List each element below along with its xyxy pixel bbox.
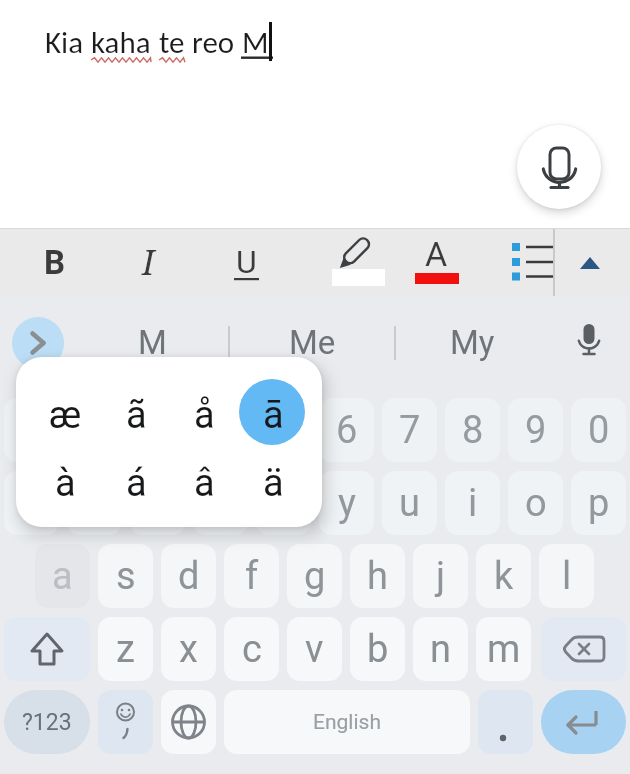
button[interactable] [541, 617, 626, 681]
button[interactable]: á [109, 452, 163, 514]
button[interactable]: U [221, 236, 271, 288]
button[interactable] [541, 690, 626, 754]
button[interactable]: My [430, 316, 514, 368]
staticText: y [338, 481, 356, 526]
button[interactable]: Me [270, 316, 354, 368]
staticText: à [55, 461, 76, 506]
button[interactable]: d [161, 544, 216, 608]
staticText: 0 [588, 408, 610, 453]
staticText: g [304, 554, 326, 599]
button[interactable]: t [256, 471, 311, 535]
button[interactable]: v [287, 617, 342, 681]
button[interactable]: a [35, 544, 90, 608]
staticText: v [305, 627, 324, 672]
staticText: B [44, 243, 66, 282]
button[interactable]: ā [246, 384, 300, 446]
button[interactable]: 3 [130, 398, 185, 462]
button[interactable]: f [224, 544, 279, 608]
button[interactable]: A [411, 232, 461, 276]
staticText: f [245, 554, 259, 599]
staticText: reo [185, 23, 242, 61]
staticText: á [126, 461, 147, 506]
button[interactable]: p [571, 471, 626, 535]
staticText: ä [263, 461, 284, 506]
button[interactable]: 4 [193, 398, 248, 462]
button[interactable]: i [445, 471, 500, 535]
button[interactable] [161, 690, 216, 754]
staticText: M [138, 323, 167, 362]
button[interactable] [505, 238, 560, 286]
button[interactable]: 5 [256, 398, 311, 462]
button[interactable]: g [287, 544, 342, 608]
button[interactable]: ?123 [4, 690, 90, 754]
staticText: kaha [91, 23, 151, 61]
button[interactable]: x [161, 617, 216, 681]
button[interactable] [325, 230, 387, 292]
button[interactable]: M [110, 316, 194, 368]
button[interactable]: o [508, 471, 563, 535]
button[interactable]: c [224, 617, 279, 681]
button[interactable] [574, 316, 604, 368]
button[interactable]: English [224, 690, 470, 754]
staticText: m [487, 627, 521, 672]
button[interactable]: 8 [445, 398, 500, 462]
staticText: c [242, 627, 262, 672]
button[interactable]: ä [246, 452, 300, 514]
staticText: a [52, 554, 73, 599]
button[interactable]: ã [109, 384, 163, 446]
button[interactable]: b [350, 617, 405, 681]
staticText: te [159, 23, 185, 61]
staticText [151, 23, 159, 61]
staticText: 6 [336, 408, 358, 453]
button[interactable]: 7 [382, 398, 437, 462]
button[interactable] [575, 250, 605, 276]
button[interactable]: r [193, 471, 248, 535]
button[interactable]: w [67, 471, 122, 535]
button[interactable] [517, 125, 601, 209]
button[interactable] [478, 690, 533, 754]
staticText: k [494, 554, 514, 599]
button[interactable]: 2 [67, 398, 122, 462]
button[interactable] [4, 617, 90, 681]
button[interactable]: 6 [319, 398, 374, 462]
staticText: x [179, 627, 198, 672]
button[interactable]: k [476, 544, 531, 608]
button[interactable]: Kia [45, 23, 269, 61]
button[interactable]: æ [38, 384, 92, 446]
button[interactable] [12, 317, 64, 369]
staticText: M [242, 23, 269, 61]
button[interactable]: l [539, 544, 594, 608]
button[interactable]: y [319, 471, 374, 535]
staticText: 9 [525, 408, 547, 453]
button[interactable]: h [350, 544, 405, 608]
button[interactable] [98, 690, 153, 754]
staticText: p [588, 481, 610, 526]
button[interactable]: 1 [4, 398, 59, 462]
button[interactable]: j [413, 544, 468, 608]
staticText: A [425, 234, 448, 274]
button[interactable]: m [476, 617, 531, 681]
button[interactable]: z [98, 617, 153, 681]
staticText: b [367, 627, 389, 672]
button[interactable]: s [98, 544, 153, 608]
button[interactable]: I [123, 236, 173, 288]
staticText: h [367, 554, 388, 599]
staticText: n [430, 627, 451, 672]
button[interactable]: 9 [508, 398, 563, 462]
button[interactable]: q [4, 471, 59, 535]
button[interactable]: å [177, 384, 231, 446]
button[interactable]: u [382, 471, 437, 535]
button[interactable]: n [413, 617, 468, 681]
staticText: Kia [45, 23, 91, 61]
staticText: 5 [273, 408, 295, 453]
button[interactable]: à [38, 452, 92, 514]
button[interactable]: 0 [571, 398, 626, 462]
button[interactable]: e [130, 471, 185, 535]
button[interactable]: â [177, 452, 231, 514]
button[interactable]: B [30, 236, 80, 288]
